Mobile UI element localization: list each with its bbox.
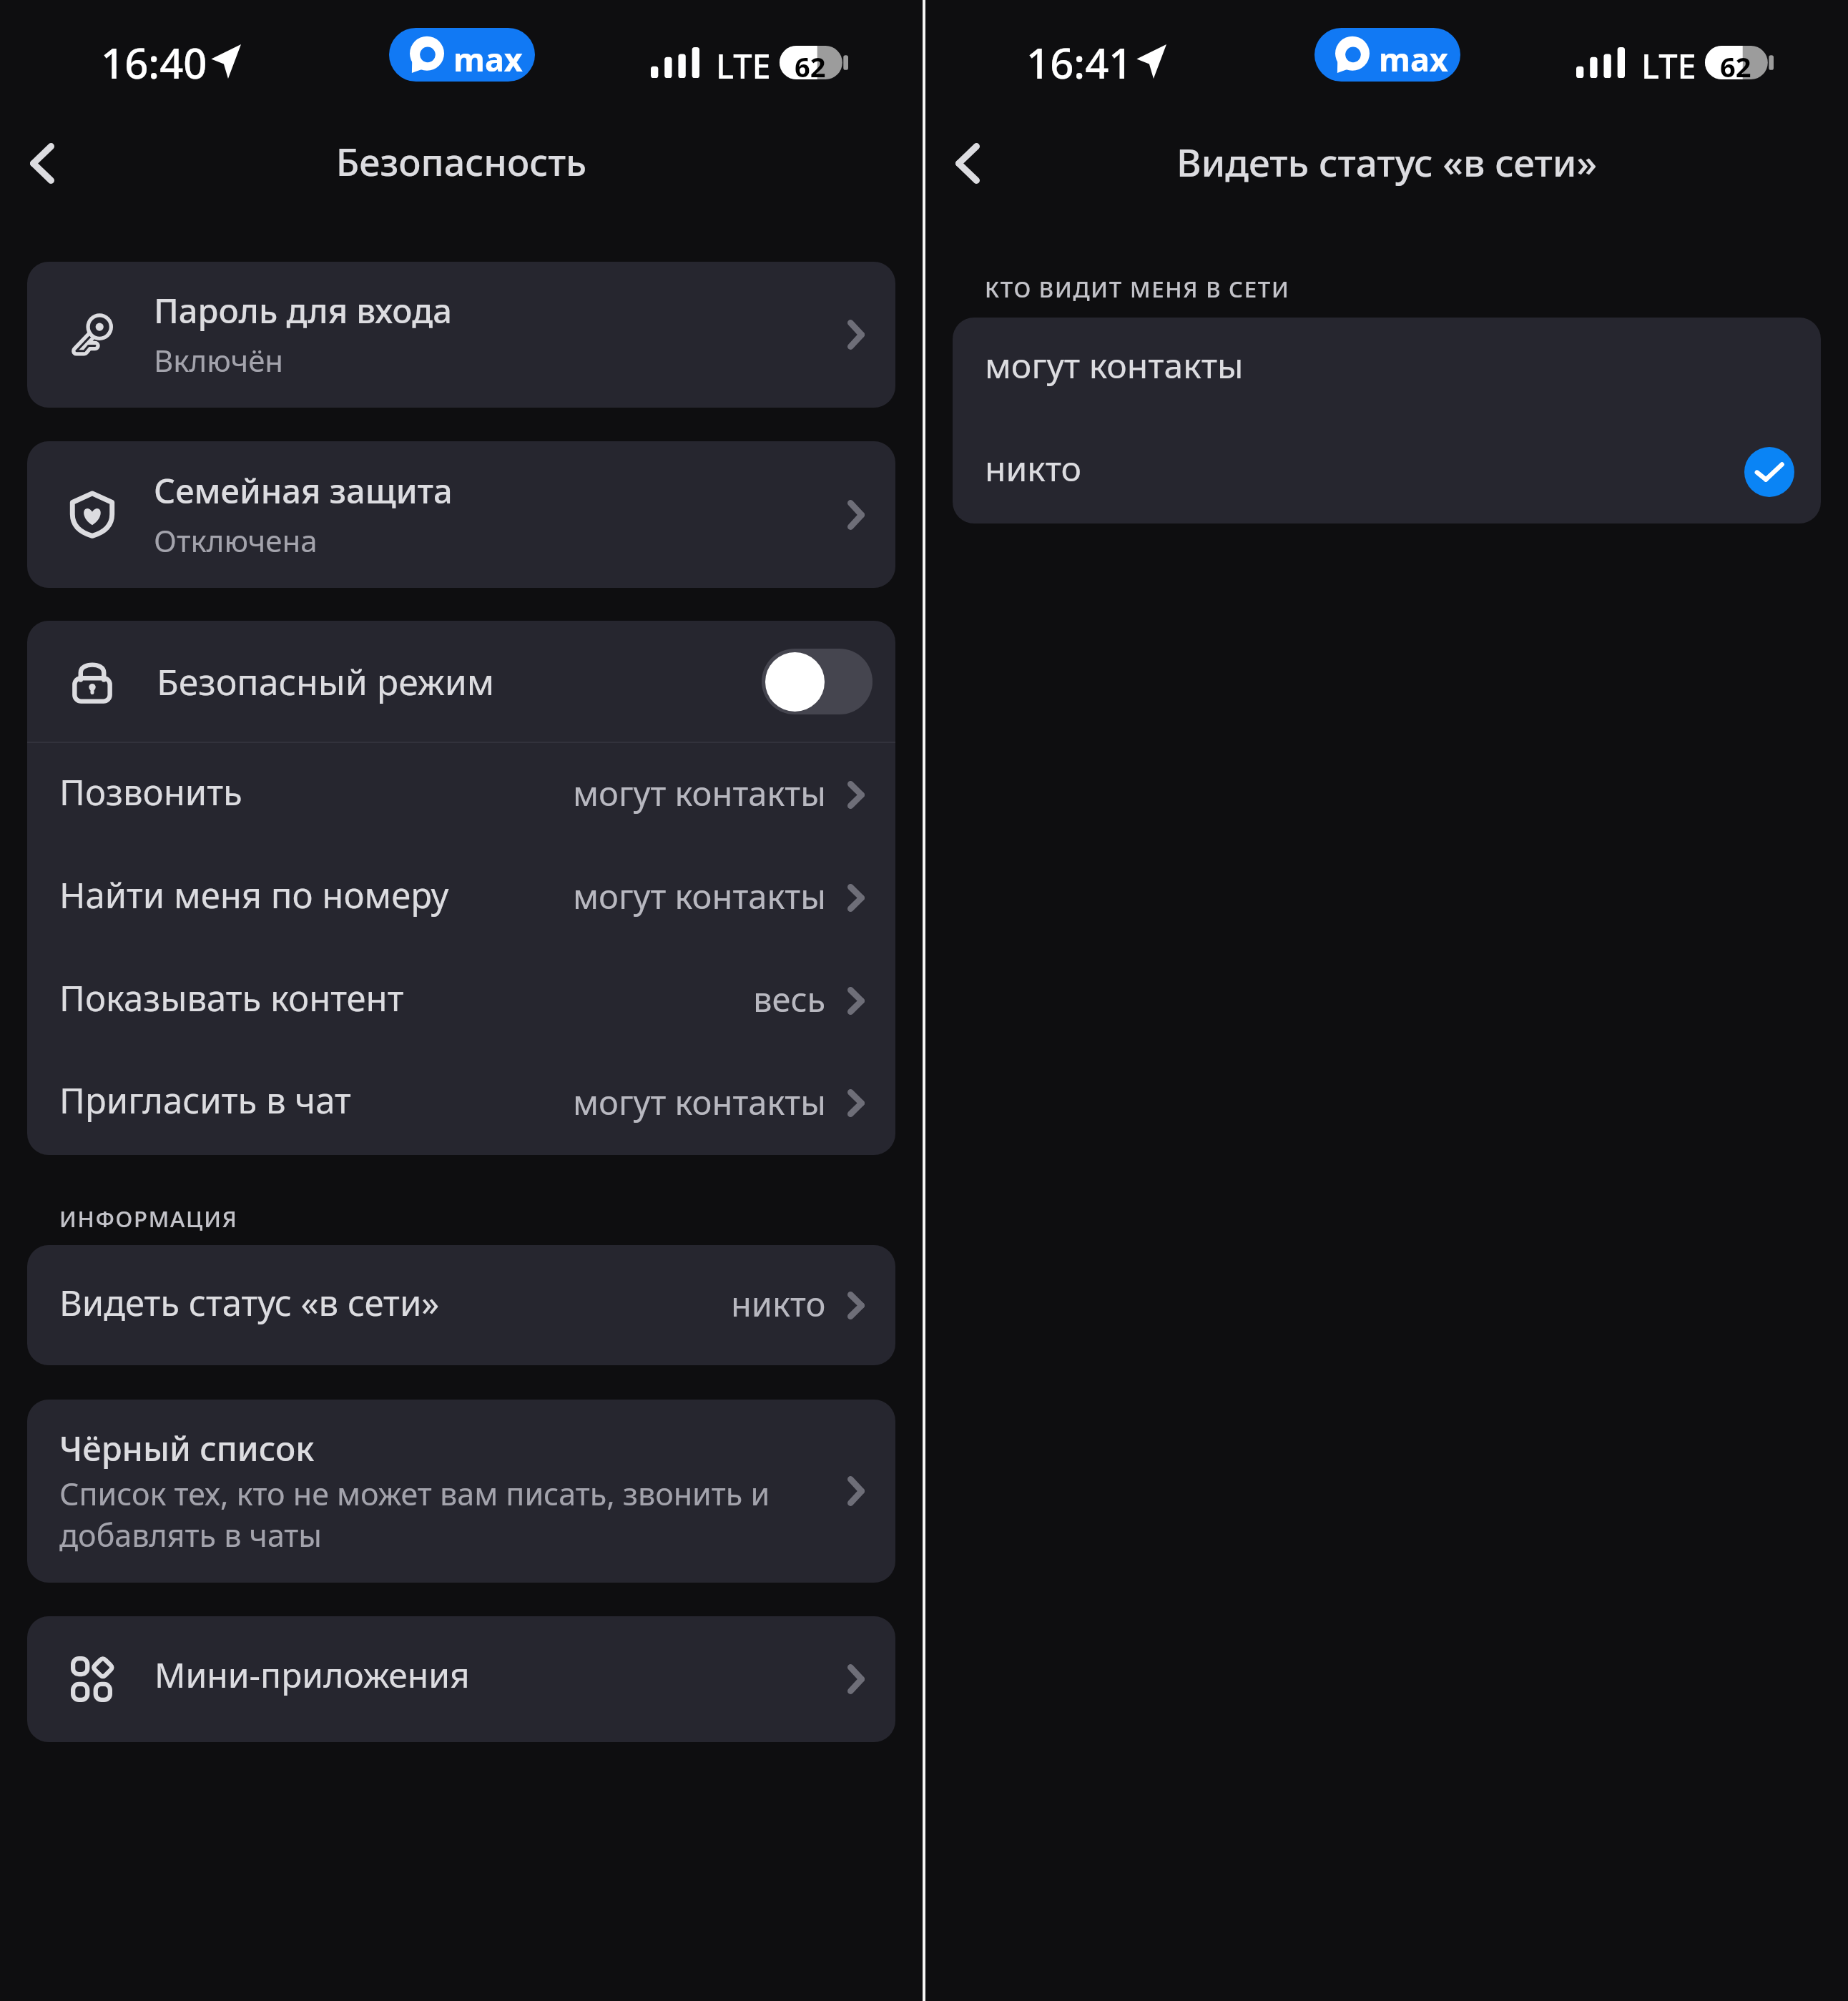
- button[interactable]: Back: [938, 126, 997, 200]
- button[interactable]: могут контакты: [953, 318, 1821, 421]
- button[interactable]: Пригласить в чат: [27, 1052, 895, 1154]
- staticText: Включён: [154, 340, 284, 380]
- staticText: max: [453, 37, 523, 81]
- staticText: могут контакты: [573, 1079, 826, 1125]
- staticText: 16:41: [1026, 34, 1133, 91]
- staticText: Безопасность: [0, 136, 923, 187]
- staticText: Показывать контент: [59, 974, 404, 1022]
- staticText: Список тех, кто не может вам писать, зво…: [59, 1473, 830, 1555]
- button[interactable]: Видеть статус «в сети»: [27, 1245, 895, 1365]
- staticText: весь: [753, 976, 826, 1022]
- button[interactable]: Семейная защита: [27, 441, 895, 588]
- staticText: Безопасный режим: [157, 657, 495, 706]
- staticText: Пригласить в чат: [59, 1076, 351, 1124]
- staticText: LTE: [1641, 43, 1696, 89]
- staticText: никто: [985, 445, 1082, 491]
- staticText: Видеть статус «в сети»: [59, 1279, 440, 1327]
- button[interactable]: Back: [13, 126, 72, 200]
- button[interactable]: Показывать контент: [27, 949, 895, 1052]
- staticText: 16:40: [101, 34, 207, 91]
- button[interactable]: Безопасный режим: [27, 621, 895, 742]
- staticText: Чёрный список: [59, 1425, 315, 1471]
- staticText: Позвонить: [59, 768, 242, 816]
- staticText: Видеть статус «в сети»: [925, 136, 1848, 187]
- staticText: КТО ВИДИТ МЕНЯ В СЕТИ: [985, 274, 1290, 304]
- staticText: Семейная защита: [154, 468, 453, 513]
- button[interactable]: никто: [953, 421, 1821, 523]
- staticText: 62: [795, 48, 826, 85]
- staticText: max: [1379, 37, 1448, 81]
- staticText: ИНФОРМАЦИЯ: [59, 1204, 238, 1234]
- staticText: могут контакты: [573, 770, 826, 816]
- staticText: никто: [731, 1281, 826, 1327]
- button[interactable]: Мини-приложения: [27, 1616, 895, 1742]
- staticText: Мини-приложения: [154, 1651, 470, 1698]
- staticText: 62: [1720, 48, 1751, 85]
- button[interactable]: Чёрный список: [27, 1400, 895, 1583]
- button[interactable]: Позвонить: [27, 743, 895, 846]
- staticText: могут контакты: [573, 873, 826, 919]
- staticText: LTE: [716, 43, 771, 89]
- staticText: могут контакты: [985, 342, 1244, 388]
- staticText: Отключена: [154, 520, 318, 561]
- button[interactable]: Найти меня по номеру: [27, 846, 895, 949]
- staticText: Найти меня по номеру: [59, 871, 449, 919]
- staticText: Пароль для входа: [154, 287, 452, 333]
- button[interactable]: Пароль для входа: [27, 262, 895, 408]
